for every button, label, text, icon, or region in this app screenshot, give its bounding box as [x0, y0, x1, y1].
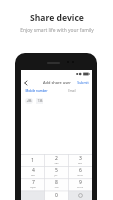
button[interactable]: 1: [21, 154, 44, 166]
button[interactable]: 0: [44, 190, 68, 200]
staticText: WXYZ: [77, 186, 83, 189]
staticText: ABC: [54, 162, 59, 165]
button[interactable]: Back: [21, 78, 30, 87]
staticText: Add share user: [43, 80, 71, 85]
staticText: JKL: [54, 174, 58, 177]
staticText: Email: [68, 89, 76, 93]
staticText: PQRS: [30, 186, 36, 189]
staticText: Submit: [77, 80, 89, 85]
staticText: Mobile number: [25, 89, 48, 93]
staticText: 2: [55, 155, 58, 162]
staticText: TUV: [54, 186, 59, 189]
button[interactable]: 5: [44, 166, 68, 178]
staticText: 8: [55, 179, 58, 186]
staticText: 0: [55, 192, 58, 199]
staticText: MNO: [77, 174, 83, 177]
button[interactable]: Submit: [77, 80, 92, 85]
staticText: 5: [55, 167, 58, 174]
staticText: 9: [79, 179, 82, 186]
staticText: 3: [79, 155, 82, 162]
button[interactable]: +86: [25, 98, 33, 104]
staticText: Enjoy smart life with your family: [20, 27, 94, 34]
button[interactable]: 9: [68, 178, 92, 190]
button[interactable]: 4: [21, 166, 44, 178]
staticText: 7: [32, 179, 35, 186]
button[interactable]: Backspace: [68, 190, 92, 200]
button[interactable]: Email: [68, 89, 76, 93]
button[interactable]: 136: [36, 98, 43, 104]
staticText: GHI: [31, 174, 35, 177]
button[interactable]: 7: [21, 178, 44, 190]
staticText: 4: [32, 167, 35, 174]
staticText: DEF: [78, 162, 82, 165]
button[interactable]: 3: [68, 154, 92, 166]
button[interactable]: 2: [44, 154, 68, 166]
staticText: +86: [26, 99, 32, 103]
staticText: 6: [79, 167, 82, 174]
staticText: 136: [37, 99, 43, 103]
button[interactable]: Mobile number: [25, 89, 48, 93]
staticText: 1: [31, 157, 34, 164]
button[interactable]: 6: [68, 166, 92, 178]
button[interactable]: 8: [44, 178, 68, 190]
staticText: Share device: [30, 12, 84, 24]
